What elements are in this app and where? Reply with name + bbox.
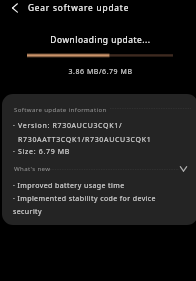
staticText: 3.86 MB/6.79 MB xyxy=(5,67,196,77)
button[interactable]: Back xyxy=(7,1,23,17)
staticText: Gear software update xyxy=(28,2,130,13)
staticText: What's new xyxy=(14,164,51,172)
staticText: · Size: 6.79 MB xyxy=(13,147,71,157)
button[interactable]: What's new xyxy=(2,162,196,176)
staticText: · Version: R730AUCU3CQK1/ R730AATT3CQK1/… xyxy=(13,121,152,144)
staticText: · Implemented stability code for device … xyxy=(13,194,156,216)
staticText: Software update information xyxy=(14,105,107,113)
staticText: Downloading update... xyxy=(5,34,196,45)
staticText: · Improved battery usage time xyxy=(13,181,125,191)
